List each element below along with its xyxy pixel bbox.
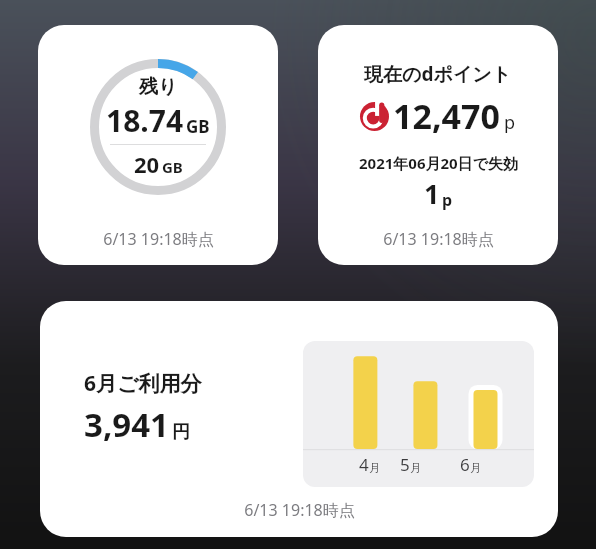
staticText: GB (186, 115, 210, 138)
staticText: 6月ご利用分 (84, 369, 202, 398)
staticText: 6/13 19:18時点 (244, 499, 355, 521)
other: d POINT logo (360, 102, 389, 131)
staticText: 円 (172, 421, 190, 444)
staticText: 18.74 (106, 100, 184, 141)
staticText: 月 (369, 461, 380, 475)
staticText: 6/13 19:18時点 (103, 228, 214, 250)
staticText: 3,941 (84, 402, 169, 447)
button[interactable]: 現在のdポイント (318, 25, 558, 265)
button[interactable]: 残り (38, 25, 278, 265)
staticText: 6/13 19:18時点 (383, 228, 494, 250)
staticText: p (504, 110, 516, 135)
staticText: 月 (410, 461, 421, 475)
staticText: 12,470 (393, 93, 500, 139)
staticText: 残り (139, 75, 178, 99)
staticText: GB (162, 157, 183, 177)
staticText: 2021年06月20日で失効 (359, 153, 518, 173)
staticText: 4 (359, 453, 369, 476)
button[interactable]: 6月ご利用分 (40, 301, 558, 537)
staticText: 20 (134, 149, 160, 179)
staticText: p (442, 189, 453, 211)
staticText: 6 (460, 453, 470, 476)
staticText: 月 (470, 461, 481, 475)
staticText: 現在のdポイント (364, 61, 512, 87)
staticText: 5 (400, 453, 410, 476)
staticText: 1 (424, 175, 440, 212)
